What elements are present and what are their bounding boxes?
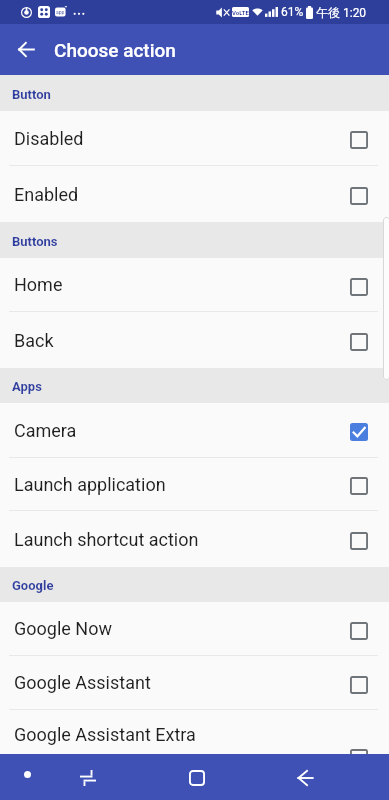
button[interactable]: Show navigation hint [11, 758, 43, 790]
button[interactable]: Back [0, 312, 389, 368]
staticText: 61% [281, 5, 304, 19]
button[interactable]: Recent apps [68, 758, 108, 798]
staticText: Camera [14, 420, 350, 441]
button[interactable]: Launch shortcut action [0, 511, 389, 567]
staticText: app [56, 9, 65, 15]
staticText: Enabled [14, 184, 350, 205]
button[interactable]: Navigate up [0, 24, 53, 75]
button[interactable]: Camera [0, 403, 389, 458]
staticText: 午後 1:20 [316, 5, 367, 20]
button[interactable]: Google Now [0, 602, 389, 656]
staticText: Apps [12, 379, 42, 394]
staticText: Google Assistant [14, 672, 350, 693]
button[interactable]: Home [0, 258, 389, 312]
staticText: Home [14, 274, 350, 295]
button[interactable]: Launch application [0, 458, 389, 511]
button[interactable]: Disabled [0, 111, 389, 166]
staticText: Launch shortcut action [14, 529, 350, 550]
staticText: Disabled [14, 128, 350, 149]
button[interactable]: Google Assistant Extra [0, 710, 389, 754]
staticText: Choose action [54, 39, 176, 61]
staticText: Google Assistant Extra [14, 724, 196, 745]
button[interactable]: Back [285, 758, 325, 798]
staticText: VoLTE [232, 9, 249, 16]
button[interactable]: Home [177, 758, 217, 798]
staticText: Button [12, 87, 51, 102]
staticText: Google Now [14, 618, 350, 639]
staticText: Buttons [12, 234, 58, 249]
button[interactable]: Enabled [0, 166, 389, 222]
staticText: Launch application [14, 474, 350, 495]
staticText: Google [12, 578, 54, 593]
staticText: Back [14, 330, 350, 351]
button[interactable]: Google Assistant [0, 656, 389, 710]
